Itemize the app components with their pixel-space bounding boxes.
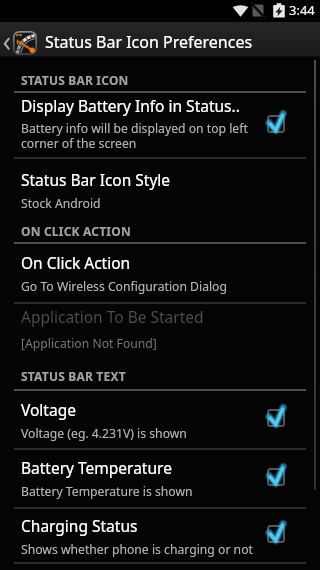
staticText: STATUS BAR ICON — [21, 72, 129, 88]
staticText: Battery Temperature — [21, 457, 172, 478]
button[interactable] — [0, 508, 320, 563]
staticText: Voltage (eg. 4.231V) is shown — [21, 425, 187, 442]
staticText: Charging Status — [21, 515, 138, 536]
staticText: Battery info will be displayed on top le… — [21, 120, 248, 137]
button[interactable] — [0, 22, 42, 57]
staticText: ON CLICK ACTION — [21, 223, 131, 239]
staticText: corner of the screen — [21, 135, 137, 152]
staticText: Application To Be Started — [21, 306, 204, 327]
staticText: Shows whether phone is charging or not — [21, 541, 253, 558]
staticText: [Application Not Found] — [21, 335, 157, 352]
staticText: Status Bar Icon Preferences — [45, 31, 253, 53]
button[interactable] — [0, 159, 320, 219]
button[interactable] — [0, 244, 320, 302]
staticText: 3:44 — [289, 1, 315, 19]
button[interactable] — [0, 390, 320, 448]
button[interactable] — [0, 92, 320, 157]
staticText: Status Bar Icon Style — [21, 169, 171, 190]
button[interactable] — [0, 449, 320, 507]
staticText: Stock Android — [21, 195, 101, 212]
staticText: Display Battery Info in Status.. — [21, 95, 240, 116]
staticText: Battery Temperature is shown — [21, 483, 193, 500]
staticText: Voltage — [21, 399, 76, 420]
staticText: Go To Wireless Configuration Dialog — [21, 278, 227, 295]
staticText: On Click Action — [21, 252, 131, 273]
staticText: STATUS BAR TEXT — [21, 368, 126, 384]
